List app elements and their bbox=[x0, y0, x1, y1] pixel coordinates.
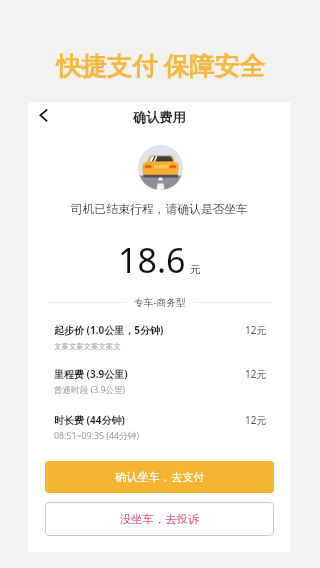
staticText: 没坐车，去投诉 bbox=[120, 512, 200, 526]
staticText: 时长费 (44分钟) bbox=[54, 413, 245, 427]
staticText: 确认坐车，去支付 bbox=[115, 470, 205, 484]
staticText: 确认费用 bbox=[133, 109, 186, 126]
button[interactable]: Back bbox=[30, 105, 56, 131]
staticText: 文案文案文案文案文 bbox=[54, 342, 121, 351]
staticText: 元 bbox=[190, 263, 201, 276]
staticText: 司机已结束行程，请确认是否坐车 bbox=[28, 202, 291, 217]
staticText: 12元 bbox=[245, 413, 267, 427]
staticText: 快捷支付 保障安全 bbox=[56, 48, 265, 83]
staticText: 专车-商务型 bbox=[134, 296, 186, 309]
staticText: 08:51~09:35 (44分钟) bbox=[54, 430, 140, 442]
staticText: 起步价 (1.0公里，5分钟) bbox=[54, 323, 245, 337]
staticText: 里程费 (3.9公里) bbox=[54, 367, 245, 381]
button[interactable]: 没坐车，去投诉 bbox=[45, 502, 274, 536]
staticText: 普通时段 (3.9公里) bbox=[54, 384, 126, 396]
staticText: 12元 bbox=[245, 323, 267, 337]
staticText: 18.6 bbox=[118, 237, 186, 283]
staticText: 12元 bbox=[245, 367, 267, 381]
button[interactable]: 确认坐车，去支付 bbox=[45, 461, 274, 493]
